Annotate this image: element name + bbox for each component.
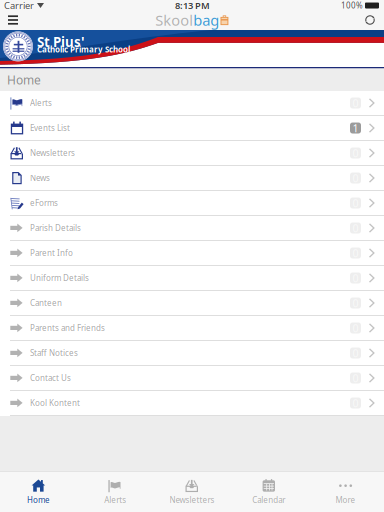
button[interactable]: Newsletters — [0, 141, 384, 166]
staticText: Parish Details — [30, 223, 81, 233]
staticText: 0 — [352, 321, 358, 335]
staticText: Catholic Primary School — [37, 44, 130, 55]
staticText: Parents and Friends — [30, 323, 105, 333]
staticText: Parent Info — [30, 248, 73, 258]
staticText: Uniform Details — [30, 273, 89, 283]
button[interactable]: Events List — [0, 116, 384, 141]
button[interactable]: Calendar — [230, 472, 307, 512]
button[interactable]: Parish Details — [0, 216, 384, 241]
staticText: Calendar — [252, 495, 285, 505]
staticText: 0 — [352, 96, 358, 110]
staticText: 100% — [341, 0, 363, 11]
button[interactable]: Refresh — [360, 11, 384, 30]
button[interactable]: Staff Notices — [0, 341, 384, 366]
button[interactable]: Kool Kontent — [0, 391, 384, 416]
button[interactable]: eForms — [0, 191, 384, 216]
button[interactable]: Home — [0, 472, 77, 512]
staticText: Kool Kontent — [30, 398, 80, 408]
staticText: 0 — [352, 196, 358, 210]
staticText: Newsletters — [169, 495, 214, 505]
staticText: 0 — [352, 371, 358, 385]
staticText: 0 — [352, 346, 358, 360]
staticText: 0 — [352, 271, 358, 285]
staticText: 0 — [352, 221, 358, 235]
button[interactable]: Newsletters — [154, 472, 230, 512]
button[interactable]: Alerts — [77, 472, 154, 512]
staticText: Events List — [30, 123, 70, 133]
button[interactable]: More — [307, 472, 384, 512]
button[interactable]: Uniform Details — [0, 266, 384, 291]
staticText: eForms — [30, 198, 58, 208]
staticText: bag — [193, 10, 219, 30]
staticText: News — [30, 173, 50, 183]
staticText: Alerts — [30, 98, 52, 108]
staticText: Skool — [155, 10, 193, 30]
button[interactable]: News — [0, 166, 384, 191]
staticText: 0 — [352, 146, 358, 160]
button[interactable]: Alerts — [0, 91, 384, 116]
staticText: Newsletters — [30, 148, 75, 158]
staticText: 0 — [352, 171, 358, 185]
staticText: Staff Notices — [30, 348, 78, 358]
button[interactable]: Contact Us — [0, 366, 384, 391]
staticText: Home — [27, 495, 50, 505]
staticText: 0 — [352, 396, 358, 410]
staticText: 1 — [352, 121, 358, 135]
staticText: Home — [7, 72, 41, 88]
button[interactable]: Canteen — [0, 291, 384, 316]
button[interactable]: Menu — [0, 11, 24, 30]
staticText: 0 — [352, 296, 358, 310]
staticText: 0 — [352, 246, 358, 260]
staticText: Canteen — [30, 298, 62, 308]
staticText: Carrier — [4, 0, 34, 12]
button[interactable]: Parent Info — [0, 241, 384, 266]
button[interactable]: Parents and Friends — [0, 316, 384, 341]
staticText: St Pius' — [37, 33, 85, 51]
staticText: 8:13 PM — [175, 0, 210, 12]
staticText: Contact Us — [30, 373, 71, 383]
staticText: Alerts — [104, 495, 126, 505]
staticText: More — [336, 495, 356, 505]
